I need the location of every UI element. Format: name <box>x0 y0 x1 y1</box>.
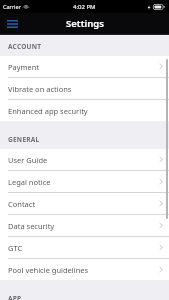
staticText: Data security <box>8 221 55 231</box>
staticText: Contact <box>8 199 36 209</box>
button[interactable]: Enhanced app security <box>0 100 169 121</box>
button[interactable]: Pool vehicle guidelines <box>0 259 169 280</box>
staticText: GTC <box>8 243 23 253</box>
staticText: 4:02 PM <box>73 3 96 11</box>
staticText: Settings <box>66 17 104 30</box>
staticText: Legal notice <box>8 177 51 187</box>
button[interactable]: GTC <box>0 237 169 258</box>
staticText: GENERAL <box>8 135 40 144</box>
button[interactable]: Legal notice <box>0 171 169 192</box>
staticText: Vibrate on actions <box>8 84 72 94</box>
staticText: User Guide <box>8 155 48 165</box>
button[interactable]: Vibrate on actions <box>0 78 169 99</box>
staticText: Carrier <box>3 3 21 10</box>
button[interactable]: Data security <box>0 215 169 236</box>
staticText: Payment <box>8 62 40 72</box>
staticText: Enhanced app security <box>8 106 88 116</box>
button[interactable]: Contact <box>0 193 169 214</box>
button[interactable]: Payment <box>0 56 169 77</box>
button[interactable]: User Guide <box>0 149 169 170</box>
staticText: ACCOUNT <box>8 42 42 51</box>
button[interactable]: Open navigation menu <box>3 15 21 33</box>
staticText: APP <box>8 294 22 300</box>
staticText: Pool vehicle guidelines <box>8 265 89 275</box>
